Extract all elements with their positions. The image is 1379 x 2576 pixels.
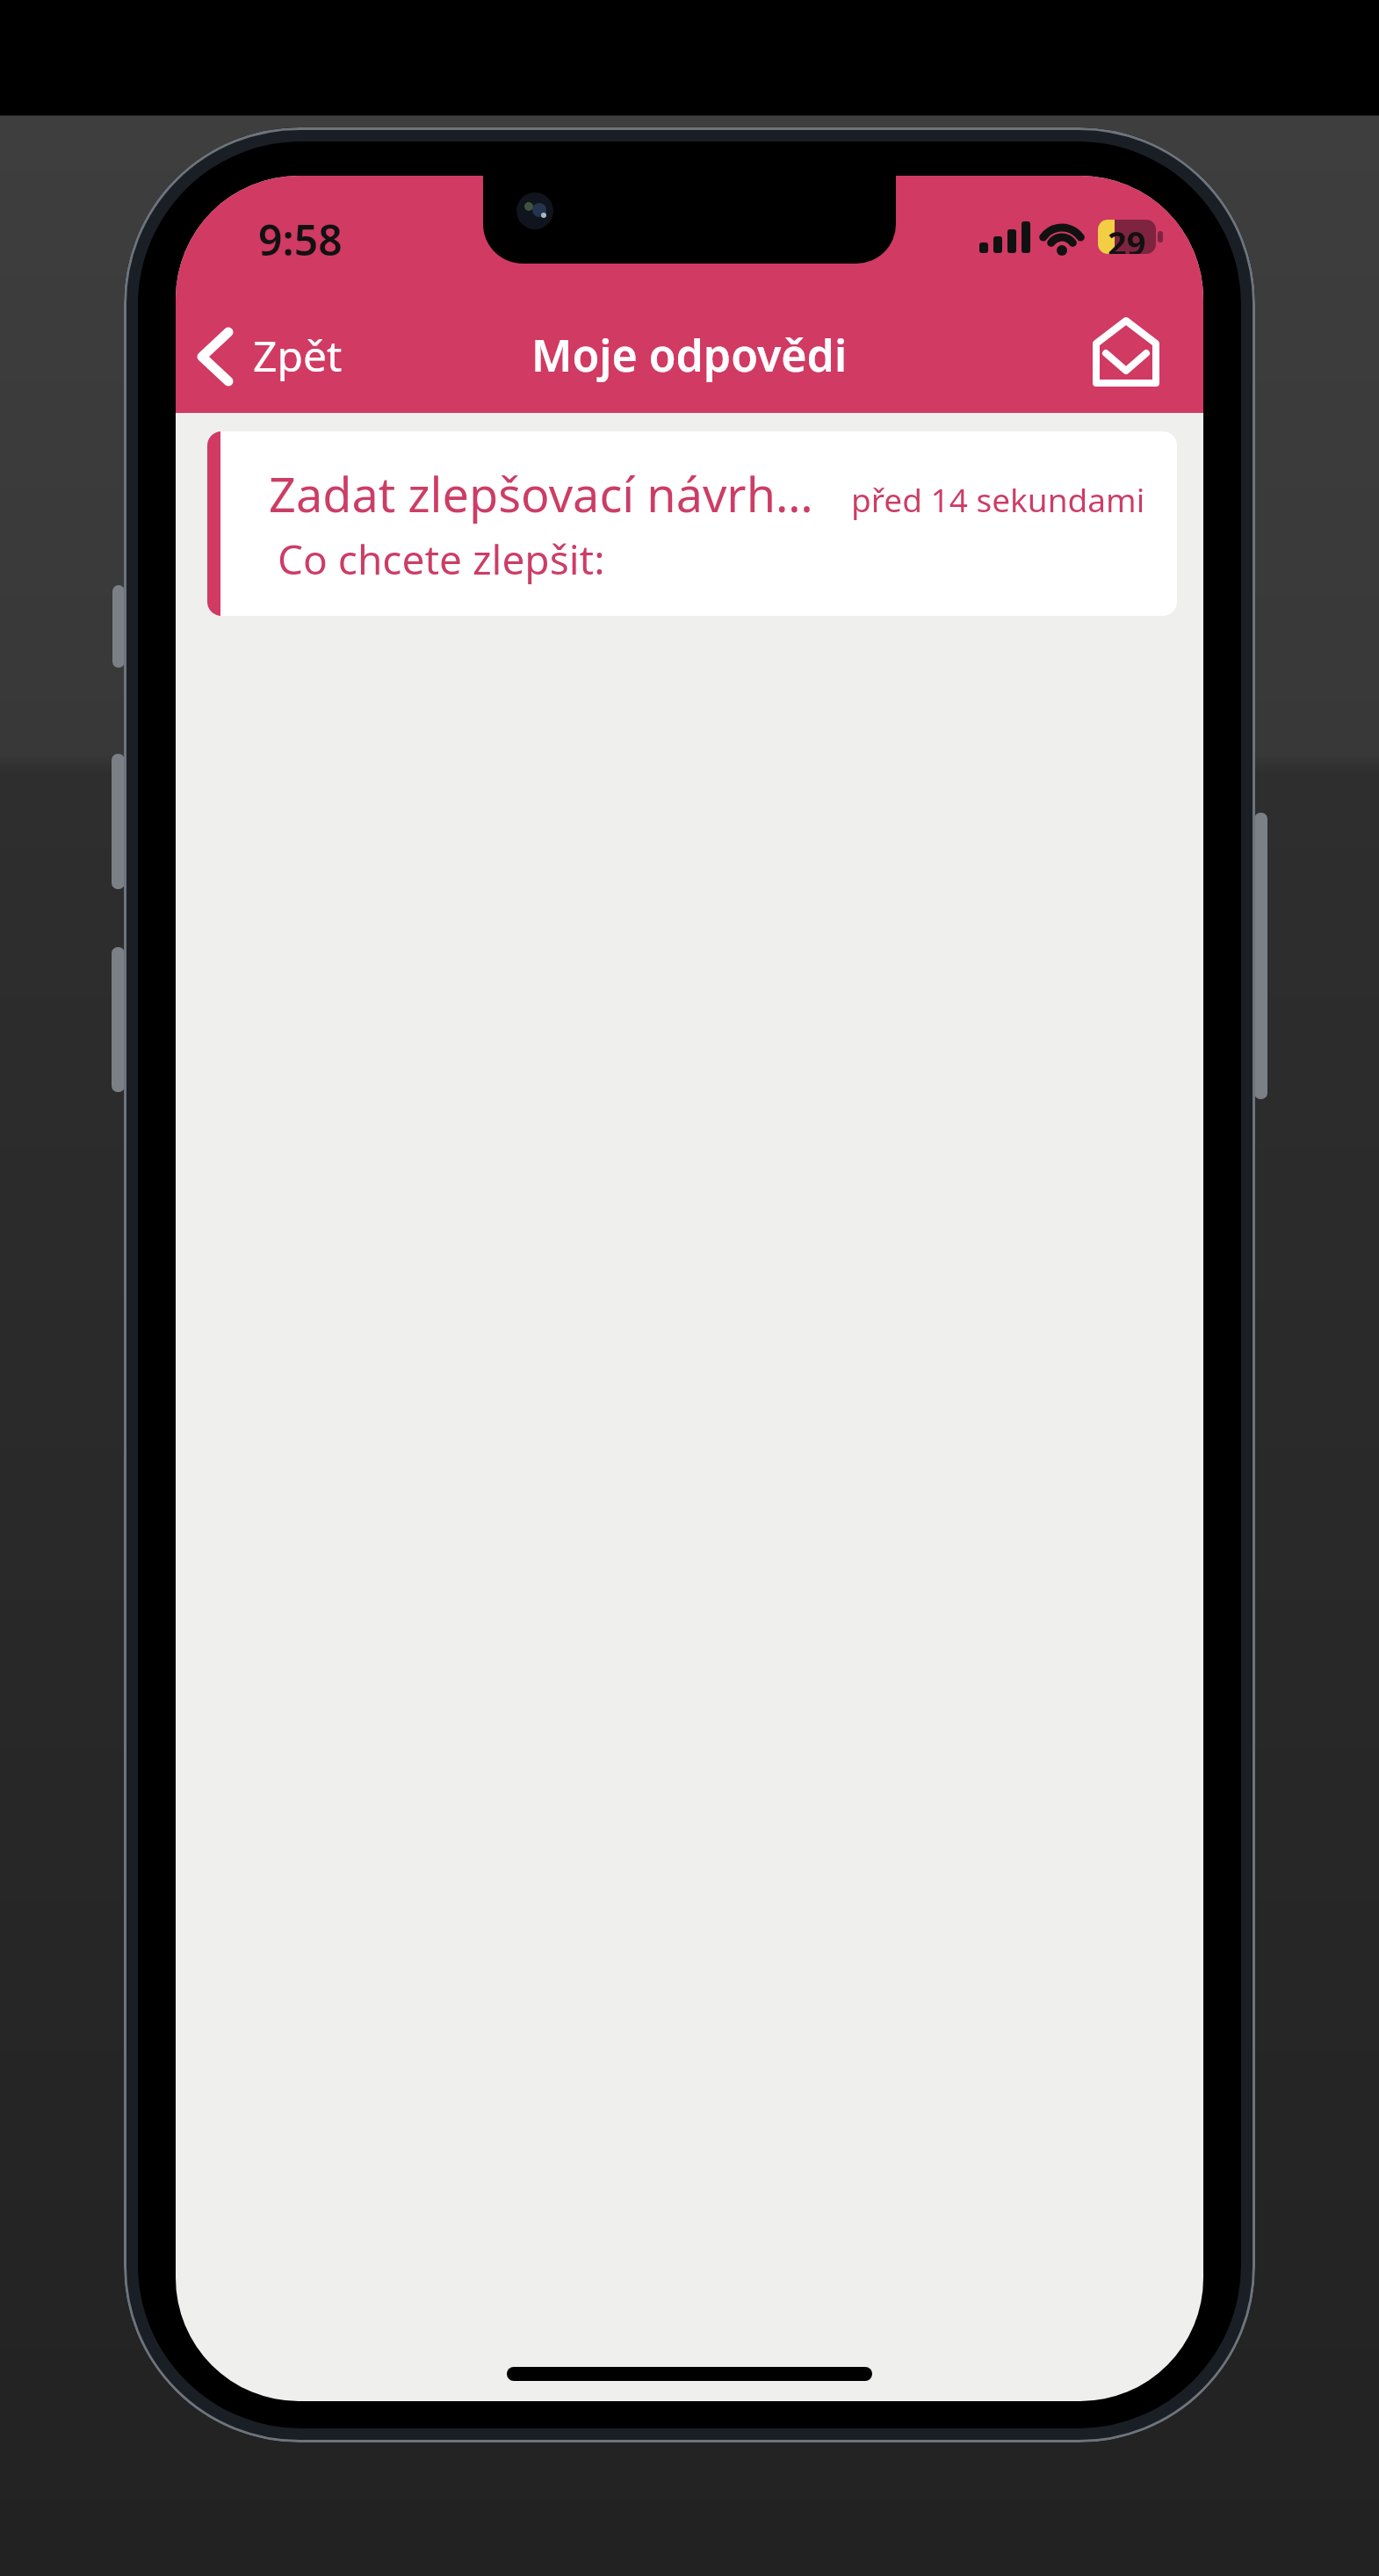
staticText: 9:58 — [258, 211, 343, 268]
staticText: Zpět — [253, 327, 343, 384]
staticText: 29 — [1108, 220, 1146, 254]
staticText: před 14 sekundami — [851, 477, 1145, 521]
button[interactable]: Zpět — [190, 318, 357, 392]
staticText: Zadat zlepšovací návrh… — [269, 461, 813, 526]
staticText: Moje odpovědi — [531, 325, 848, 385]
button[interactable] — [1086, 313, 1166, 394]
staticText: Co chcete zlepšit: — [278, 532, 605, 587]
button[interactable]: Zadat zlepšovací návrh… — [207, 431, 1177, 616]
